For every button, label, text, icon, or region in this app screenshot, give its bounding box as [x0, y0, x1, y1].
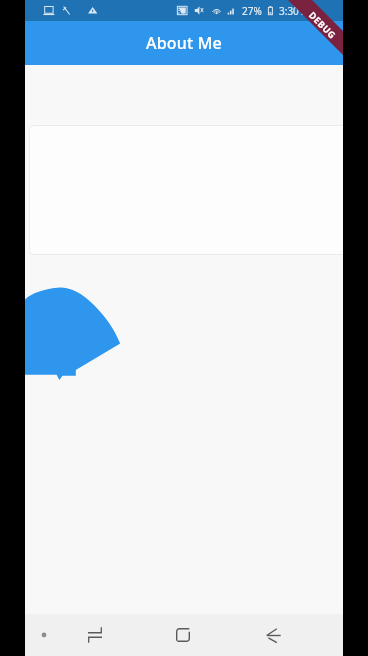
- staticText: 27%: [242, 4, 262, 18]
- staticText: 3:30 AM: [279, 4, 317, 18]
- staticText: DEBUG: [307, 9, 339, 41]
- button[interactable]: Recent apps: [71, 614, 119, 656]
- button[interactable]: Home: [159, 614, 207, 656]
- staticText: About Me: [146, 32, 222, 54]
- button[interactable]: Back: [249, 614, 297, 656]
- button[interactable]: Hide navigation bar: [33, 624, 55, 646]
